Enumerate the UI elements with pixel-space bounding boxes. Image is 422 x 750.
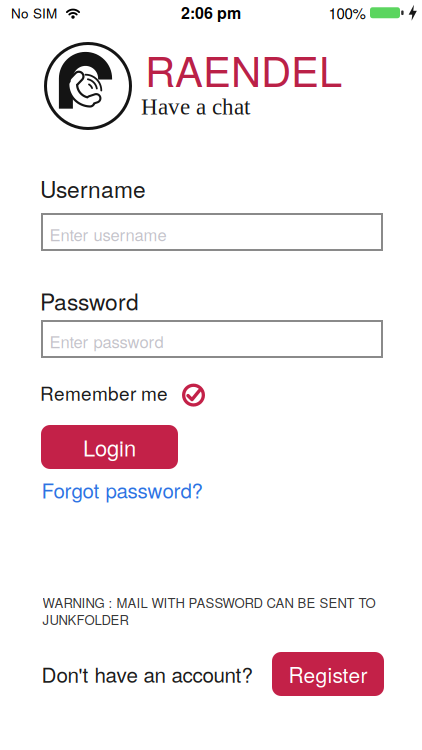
staticText: Enter username [49, 222, 166, 246]
staticText: Remember me [40, 379, 168, 406]
staticText: JUNKFOLDER [42, 610, 128, 629]
textField[interactable]: Enter username [41, 213, 383, 251]
staticText: Enter password [49, 329, 163, 353]
staticText: Don't have an account? [41, 659, 252, 688]
staticText: Have a chat [141, 94, 250, 119]
staticText: 100% [328, 2, 365, 23]
staticText: Username [40, 172, 146, 205]
staticText: Password [40, 284, 139, 317]
staticText: 2:06 pm [181, 1, 241, 24]
staticText: RAENDEL [145, 39, 342, 99]
staticText: Login [83, 431, 136, 463]
staticText: Register [288, 659, 367, 689]
staticText: No SIM [11, 3, 57, 22]
staticText: WARNING : MAIL WITH PASSWORD CAN BE SENT… [42, 593, 375, 612]
button[interactable]: Remember me [40, 379, 205, 406]
button[interactable]: Login [41, 425, 178, 469]
button[interactable]: Forgot password? [41, 475, 202, 504]
textField[interactable]: Enter password [41, 320, 383, 358]
staticText: Forgot password? [41, 475, 202, 504]
button[interactable]: Register [272, 652, 384, 696]
